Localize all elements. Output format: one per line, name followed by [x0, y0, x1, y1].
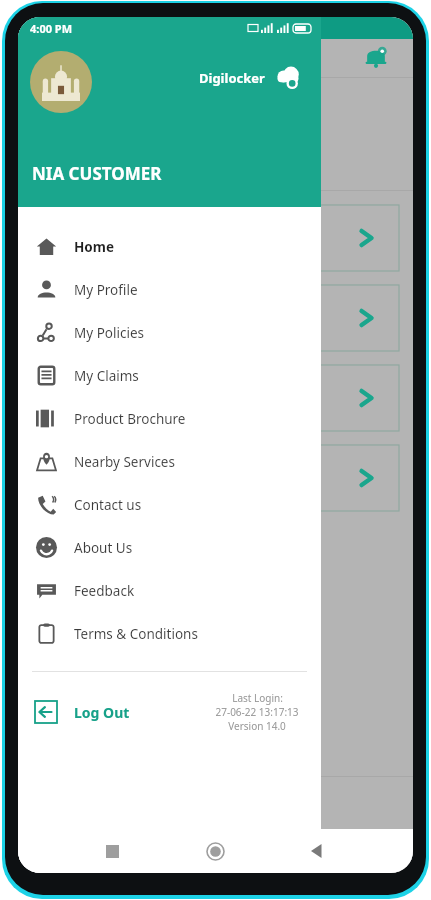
staticText: Nearby Services — [74, 453, 175, 471]
staticText: Log Out — [74, 703, 130, 722]
button[interactable]: My Policies — [18, 311, 321, 354]
button[interactable] — [32, 365, 399, 431]
staticText: 27-06-22 13:17:13 — [215, 705, 299, 719]
staticText: Home — [74, 238, 114, 256]
button[interactable]: Terms & Conditions — [18, 612, 321, 655]
staticText: 4:00 PM — [30, 21, 73, 36]
button[interactable]: Log Out — [18, 690, 321, 734]
staticText: Feedback — [74, 582, 135, 600]
staticText: My Policies — [74, 324, 144, 342]
staticText: Version 14.0 — [228, 719, 286, 733]
staticText: Terms & Conditions — [74, 625, 198, 643]
button[interactable]: Digilocker — [199, 63, 303, 93]
staticText: Product Brochure — [74, 410, 186, 428]
button[interactable]: Contact us — [18, 483, 321, 526]
staticText: My Claims — [74, 367, 139, 385]
button[interactable]: My Claims — [18, 354, 321, 397]
staticText: NIA CUSTOMER — [32, 162, 162, 185]
button[interactable] — [32, 445, 399, 511]
button[interactable]: About Us — [18, 526, 321, 569]
staticText: My Profile — [74, 281, 138, 299]
staticText: Last Login: — [232, 691, 283, 705]
staticText: Contact us — [74, 496, 142, 514]
button[interactable]: Notifications — [363, 45, 389, 71]
button[interactable]: Home — [18, 225, 321, 268]
button[interactable]: Nearby Services — [18, 440, 321, 483]
button[interactable]: Product Brochure — [18, 397, 321, 440]
button[interactable]: Feedback — [18, 569, 321, 612]
button[interactable]: My Profile — [18, 268, 321, 311]
button[interactable] — [32, 285, 399, 351]
staticText: Digilocker — [199, 69, 265, 87]
button[interactable] — [32, 205, 399, 271]
staticText: About Us — [74, 539, 133, 557]
